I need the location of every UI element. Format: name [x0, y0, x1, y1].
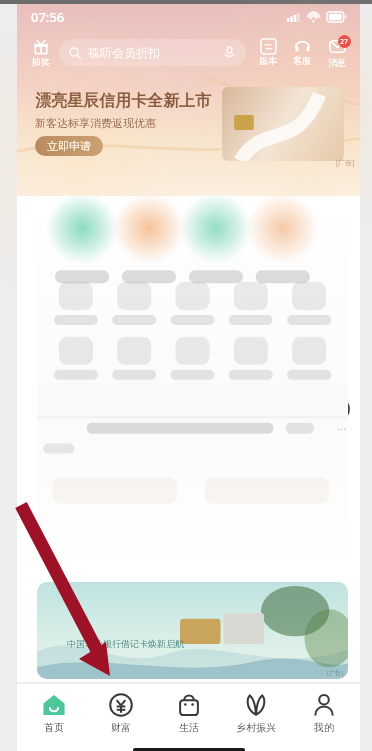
button[interactable]: 乡村振兴	[225, 691, 287, 736]
button[interactable]: 客服	[286, 38, 318, 67]
button[interactable]: 我的	[293, 691, 355, 736]
button[interactable]: 漂亮星辰信用卡全新上市	[17, 77, 360, 170]
button[interactable]: 消息	[320, 36, 354, 69]
staticText: 07:56	[31, 8, 65, 26]
staticText: ...	[337, 418, 346, 433]
staticText: 27	[340, 37, 349, 47]
staticText: 抽奖	[32, 56, 50, 67]
staticText: 生活	[40, 434, 62, 448]
button[interactable]: 中国农业银行借记卡焕新启航	[37, 582, 348, 679]
staticText: 生活	[179, 721, 199, 734]
staticText: 服务	[315, 343, 337, 357]
other: 消息	[330, 39, 345, 54]
staticText: [广告]	[336, 158, 355, 168]
staticText: 漂亮星辰信用卡全新上市	[35, 91, 211, 111]
staticText: 我的	[314, 721, 334, 734]
staticText: 中国农业银行借记卡焕新启航	[67, 638, 184, 649]
staticText: 客服	[293, 55, 311, 66]
button[interactable]: 视听会员折扣	[59, 39, 246, 66]
button[interactable]: 首页	[23, 691, 85, 736]
button[interactable]: 生活	[158, 691, 220, 736]
staticText: 首页	[44, 721, 64, 734]
button[interactable]: 抽奖	[23, 38, 59, 68]
button[interactable]: 立即申请	[35, 136, 103, 156]
staticText: 乡村振兴	[236, 721, 276, 734]
staticText: 立即申请	[47, 139, 91, 153]
other: 抽奖	[33, 39, 49, 55]
button[interactable]: 版本	[252, 38, 284, 67]
staticText: 消息	[328, 57, 346, 68]
other: 客服	[295, 39, 310, 54]
staticText: [广告]	[327, 669, 343, 677]
staticText: 新客达标享消费返现优惠	[35, 116, 156, 130]
button[interactable]: 财富	[90, 691, 152, 736]
staticText: 财富	[111, 721, 131, 734]
other: 版本	[261, 39, 276, 54]
other: 语音搜索	[223, 46, 236, 59]
staticText: 视听会员折扣	[88, 45, 160, 60]
staticText: 版本	[259, 55, 277, 66]
